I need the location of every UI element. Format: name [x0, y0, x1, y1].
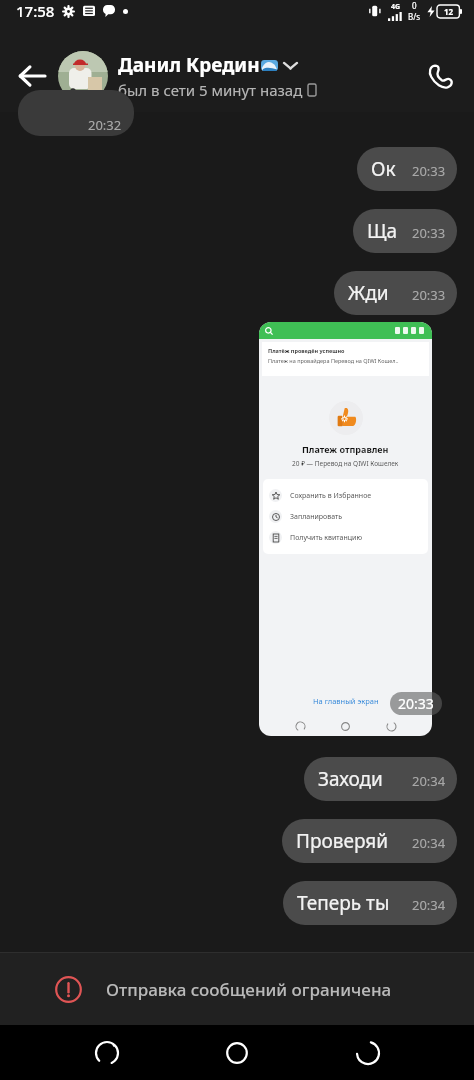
button[interactable]: Отправка сообщений ограничена	[0, 953, 474, 1025]
button[interactable]: Теперь ты	[283, 881, 457, 925]
staticText: 20 ₽ — Перевод на QIWI Кошелек	[292, 459, 399, 468]
button[interactable]: Заходи	[304, 757, 457, 801]
staticText: Сохранить в Избранное	[290, 491, 372, 501]
staticText: Платеж отправлен	[302, 443, 389, 455]
staticText: 12	[444, 6, 454, 17]
button[interactable]: Ща	[353, 209, 457, 253]
button[interactable]: Запланировать	[269, 510, 422, 523]
button[interactable]: Проверяй	[282, 819, 457, 863]
button[interactable]: Call	[416, 52, 464, 100]
button[interactable]: Сохранить в Избранное	[269, 489, 422, 502]
staticText: Данил Кредин	[118, 52, 260, 78]
button[interactable]: Back	[8, 52, 56, 100]
staticText: На главный экран	[313, 696, 379, 706]
button[interactable]: Home	[213, 1029, 261, 1077]
staticText: 20:32	[88, 116, 122, 134]
staticText: 20:33	[412, 162, 446, 180]
button[interactable]: Получить квитанцию	[269, 531, 422, 544]
staticText: Заходи	[318, 766, 383, 792]
staticText: 20:34	[412, 834, 446, 852]
staticText: 4G	[391, 2, 401, 12]
button[interactable]: Платёж проведён успешно	[259, 322, 432, 736]
staticText: Жди	[348, 280, 389, 306]
staticText: Получить квитанцию	[290, 533, 363, 543]
staticText: 20:33	[412, 224, 446, 242]
staticText: Проверяй	[296, 828, 389, 854]
staticText: Теперь ты	[297, 890, 390, 916]
button[interactable]: Данил Кредин	[118, 52, 416, 100]
button[interactable]: Жди	[334, 271, 457, 315]
staticText: 20:33	[398, 694, 434, 713]
button[interactable]: Recent apps	[83, 1029, 131, 1077]
staticText: Запланировать	[290, 512, 343, 522]
staticText: 0	[412, 0, 417, 11]
staticText: 20:34	[412, 896, 446, 914]
staticText: Платеж на провайдера Перевод на QIWI Кош…	[268, 357, 399, 364]
button[interactable]: Back	[344, 1029, 392, 1077]
staticText: 20:34	[412, 772, 446, 790]
staticText: B/s	[408, 11, 421, 22]
button[interactable]: Ок	[357, 147, 457, 191]
button[interactable]	[58, 51, 108, 101]
button[interactable]: 20:32	[18, 90, 134, 136]
staticText: 20:33	[412, 286, 446, 304]
staticText: Ща	[367, 218, 398, 244]
staticText: 17:58	[16, 1, 55, 21]
staticText: Платёж проведён успешно	[268, 347, 345, 354]
staticText: Отправка сообщений ограничена	[106, 978, 392, 1001]
staticText: был в сети 5 минут назад	[118, 80, 303, 100]
staticText: Ок	[371, 156, 396, 182]
